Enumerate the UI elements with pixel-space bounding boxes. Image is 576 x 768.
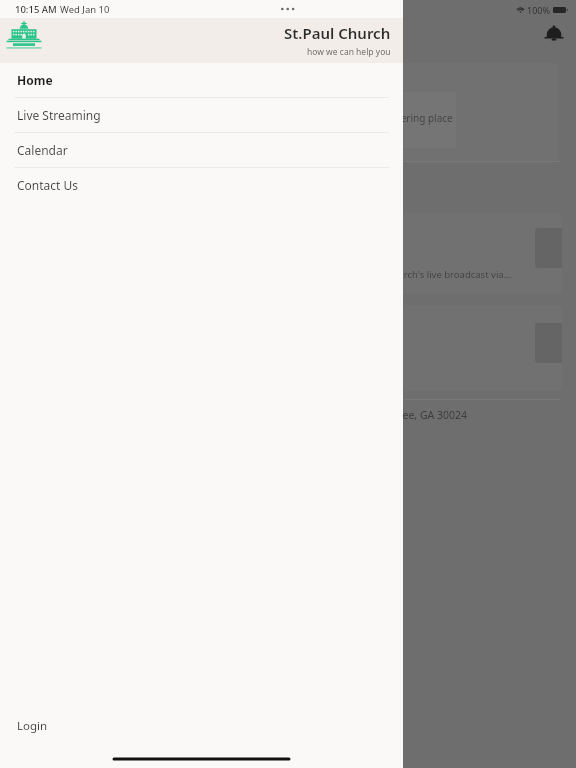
other: St.Paul Church logo — [5, 20, 43, 62]
button[interactable]: Home — [0, 63, 403, 97]
staticText: Wed Jan 10 — [60, 3, 110, 16]
staticText: how we can help you — [307, 46, 391, 58]
staticText: Watch the church's live broadcast via... — [340, 268, 512, 281]
staticText: St.Paul Church — [284, 23, 391, 43]
staticText: 10:15 AM — [15, 3, 57, 16]
staticText: Calendar — [17, 142, 68, 158]
button[interactable] — [160, 63, 558, 163]
button[interactable]: Contact Us — [0, 168, 403, 202]
staticText: Login — [17, 718, 48, 734]
button[interactable]: Calendar — [0, 133, 403, 167]
staticText: Contact Us — [17, 177, 79, 193]
staticText: 100% — [527, 4, 550, 15]
button[interactable] — [180, 305, 562, 391]
staticText: Home — [17, 72, 53, 88]
button[interactable]: Live Streaming — [0, 98, 403, 132]
button[interactable]: Login — [0, 706, 403, 746]
button[interactable]: Watch the church's live broadcast via... — [180, 213, 562, 294]
staticText: Christ, a gathering place of — [338, 111, 456, 139]
staticText: Live Streaming — [17, 107, 101, 123]
button[interactable]: Notifications — [540, 20, 568, 48]
staticText: 2100 Peachtree Pkwy, Suwanee, GA 30024 — [260, 408, 468, 422]
